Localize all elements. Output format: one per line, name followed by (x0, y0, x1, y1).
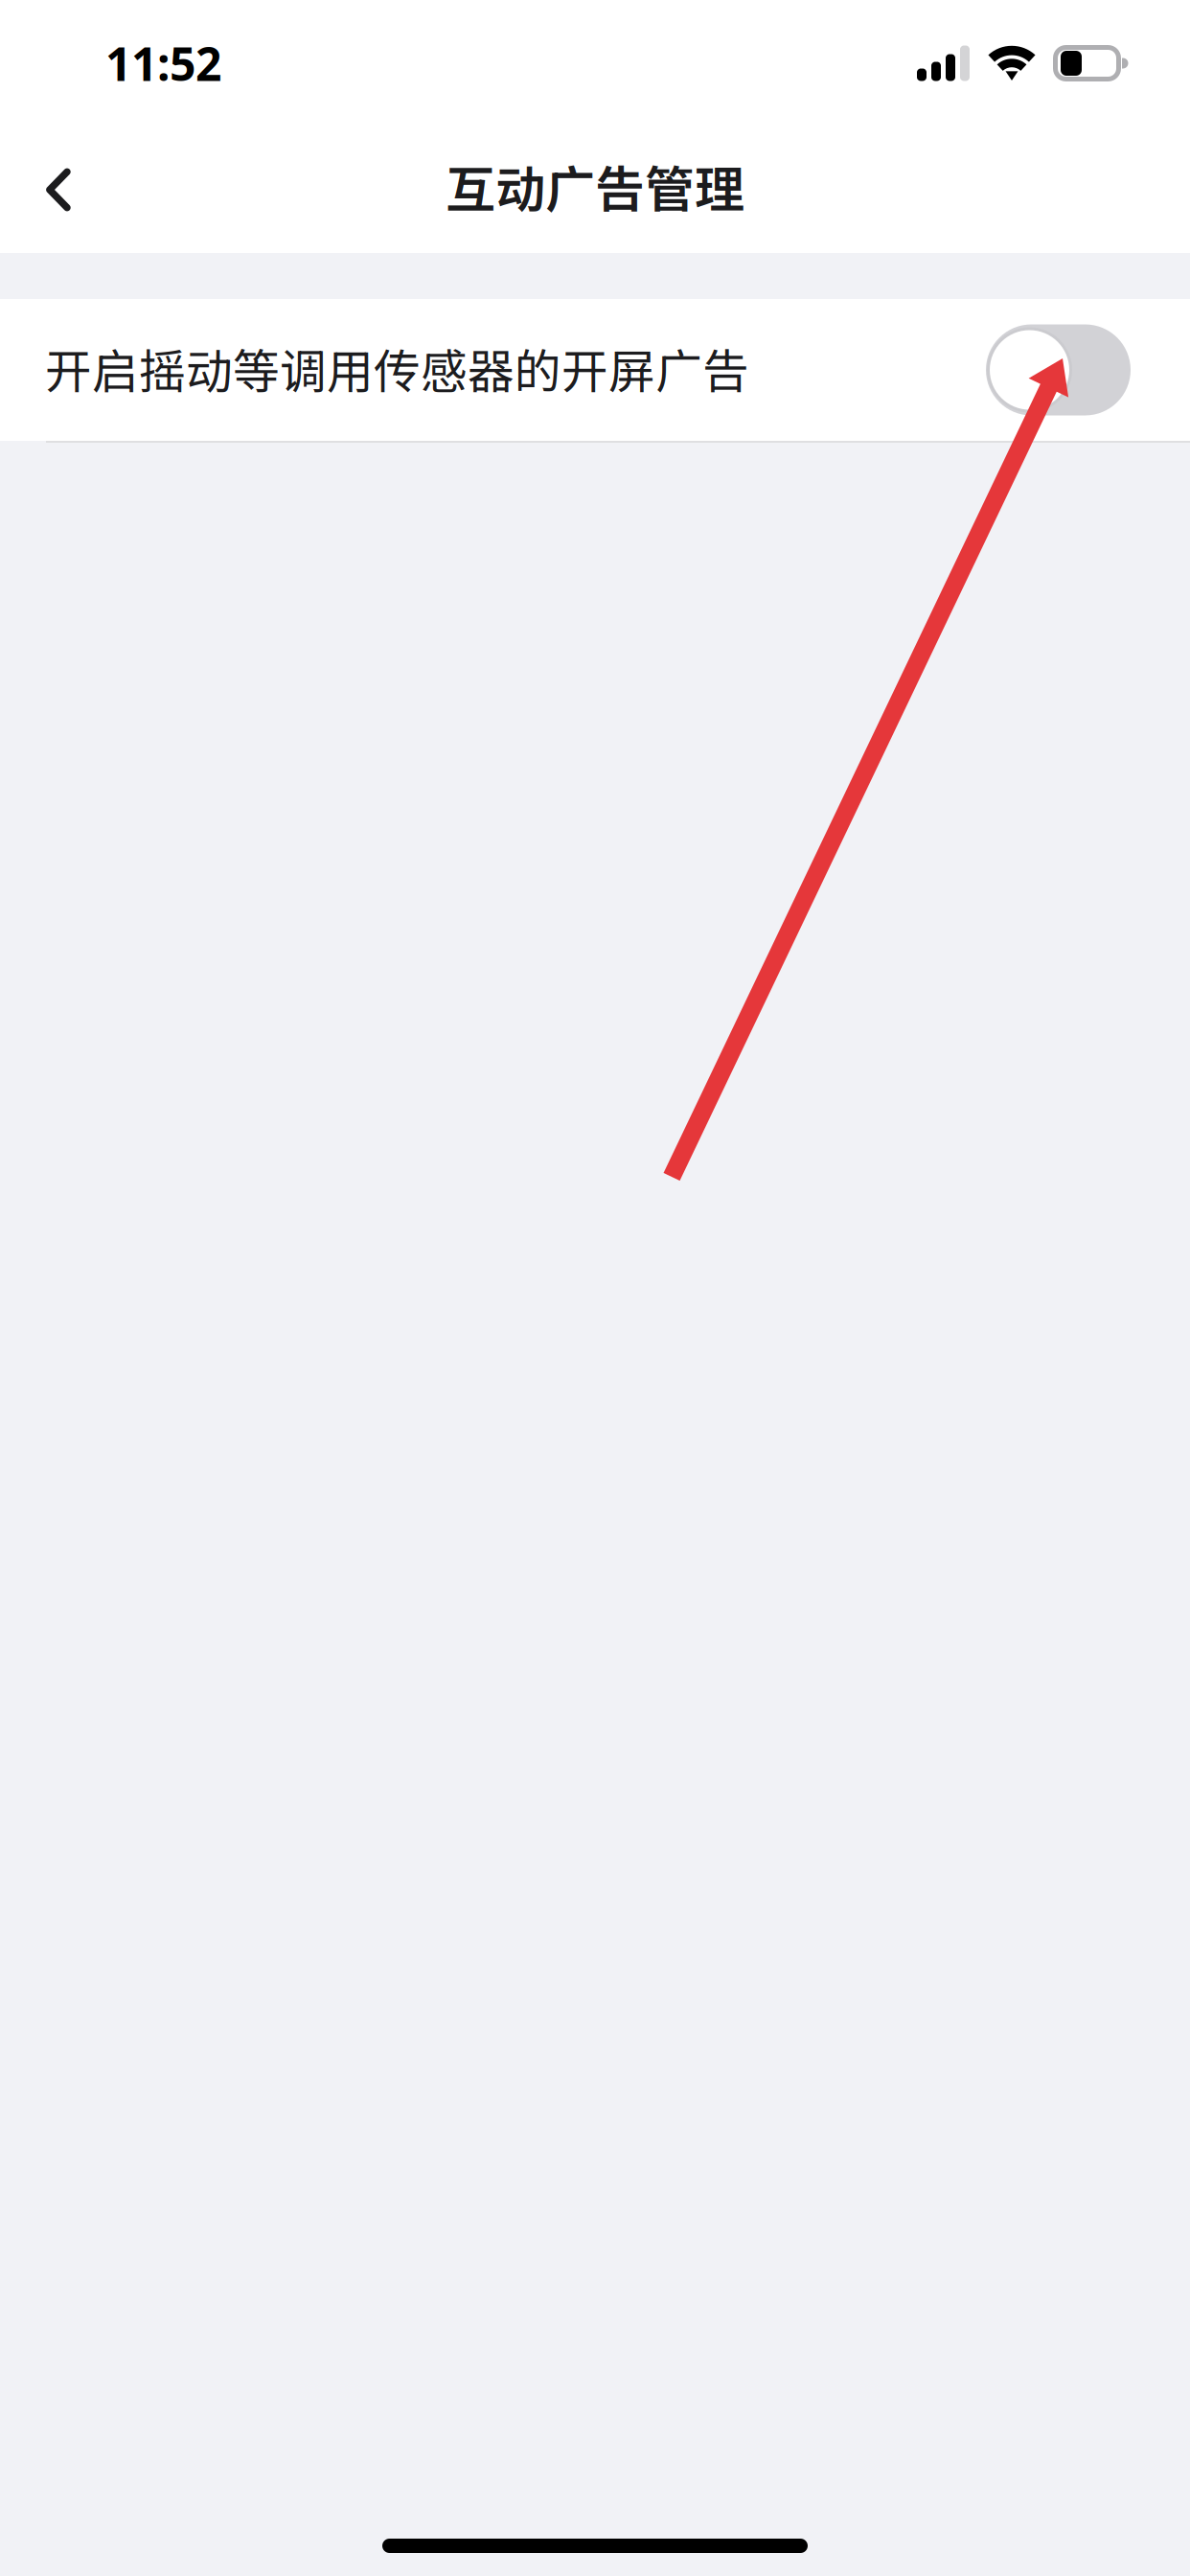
button[interactable]: 返回 (0, 126, 117, 253)
staticText: 互动广告管理 (446, 150, 744, 222)
staticText: 开启摇动等调用传感器的开屏广告 (45, 334, 749, 402)
button[interactable]: 开启摇动等调用传感器的开屏广告 (986, 324, 1131, 415)
staticText: 11:52 (105, 32, 221, 95)
button[interactable]: 开启摇动等调用传感器的开屏广告 (0, 299, 1190, 441)
